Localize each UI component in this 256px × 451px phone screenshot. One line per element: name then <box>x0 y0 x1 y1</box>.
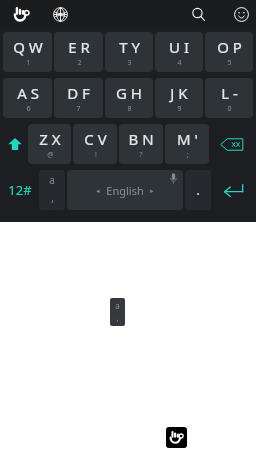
staticText: 0 <box>227 104 232 114</box>
staticText: 3 <box>127 58 132 68</box>
staticText: E R <box>68 37 90 57</box>
button[interactable]: G H <box>105 78 153 118</box>
staticText: ? <box>139 150 143 160</box>
button[interactable]: Q W <box>3 32 52 72</box>
button[interactable]: C V <box>73 124 117 164</box>
staticText: D F <box>67 83 90 103</box>
button[interactable]: Emoji <box>226 0 256 28</box>
button[interactable]: Z X <box>28 124 71 164</box>
button[interactable]: M ' <box>165 124 209 164</box>
button[interactable]: T Y <box>105 32 153 72</box>
button[interactable]: U I <box>155 32 203 72</box>
button[interactable]: Language <box>44 0 76 28</box>
staticText: C V <box>84 129 107 149</box>
staticText: , <box>116 312 119 323</box>
button[interactable]: . <box>185 170 211 210</box>
button[interactable]: ◂ <box>67 170 183 210</box>
staticText: 9 <box>177 104 182 114</box>
staticText: ▸ <box>150 187 154 195</box>
button[interactable]: A S <box>3 78 52 118</box>
staticText: 2 <box>77 58 82 68</box>
staticText: , <box>51 191 54 205</box>
staticText: A S <box>17 83 39 103</box>
staticText: 8 <box>127 104 132 114</box>
button[interactable]: E R <box>54 32 103 72</box>
staticText: L - <box>221 83 238 103</box>
button[interactable]: Handwriting input <box>166 427 187 448</box>
staticText: T Y <box>119 37 140 57</box>
staticText: 5 <box>227 58 232 68</box>
staticText: English <box>106 183 144 198</box>
staticText: 6 <box>26 104 31 114</box>
staticText: B N <box>128 129 154 149</box>
button[interactable]: D F <box>54 78 103 118</box>
button[interactable]: Search <box>182 0 214 28</box>
staticText: ; <box>187 150 189 160</box>
button[interactable]: Backspace <box>211 124 253 164</box>
staticText: Z X <box>39 129 61 149</box>
staticText: . <box>196 182 200 198</box>
staticText: 7 <box>76 104 81 114</box>
staticText: G H <box>116 83 142 103</box>
staticText: M ' <box>177 129 198 149</box>
button[interactable]: O P <box>205 32 253 72</box>
staticText: 12# <box>8 181 32 199</box>
button[interactable]: Shift <box>3 124 26 164</box>
button[interactable]: Accent key <box>110 298 125 326</box>
staticText: ! <box>95 150 97 160</box>
staticText: a <box>115 300 120 311</box>
button[interactable]: B N <box>119 124 163 164</box>
staticText: ◂ <box>96 187 100 195</box>
button[interactable]: Enter <box>213 170 253 210</box>
button[interactable]: Handwriting <box>4 0 38 28</box>
staticText: a <box>49 173 55 187</box>
staticText: @ <box>47 150 54 160</box>
button[interactable]: L - <box>205 78 253 118</box>
button[interactable]: Accents <box>39 170 65 210</box>
button[interactable]: J K <box>155 78 203 118</box>
staticText: J K <box>170 83 188 103</box>
staticText: 4 <box>177 58 182 68</box>
staticText: O P <box>217 37 242 57</box>
button[interactable]: 12# <box>3 170 37 210</box>
staticText: Q W <box>13 37 43 57</box>
staticText: U I <box>169 37 189 57</box>
staticText: 1 <box>26 58 31 68</box>
